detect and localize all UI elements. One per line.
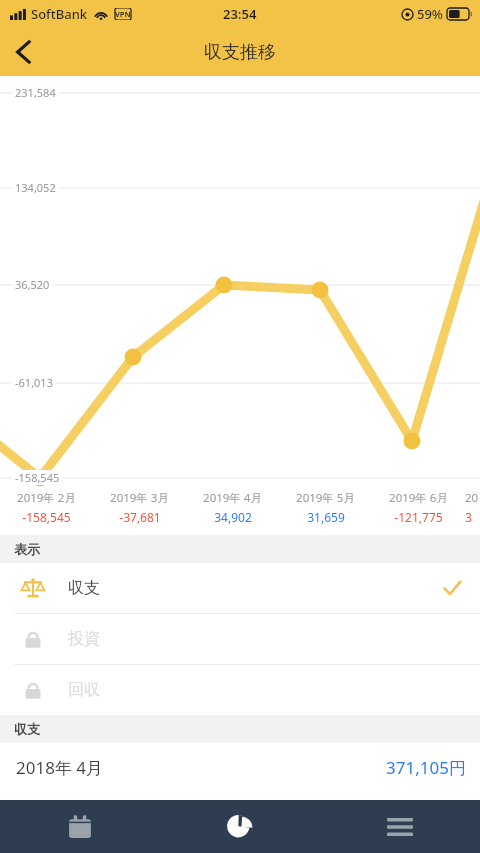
staticText: 134,052 xyxy=(15,180,56,195)
staticText: 371,105円 xyxy=(386,756,466,779)
button[interactable]: 投資 xyxy=(0,614,480,664)
staticText: 3 xyxy=(465,509,472,525)
button[interactable]: 回収 xyxy=(0,665,480,715)
button[interactable]: Charts xyxy=(160,800,320,853)
staticText: -158,545 xyxy=(15,470,60,485)
staticText: -121,775 xyxy=(394,509,443,525)
staticText: 2019年 6月 xyxy=(389,490,448,506)
staticText: -61,013 xyxy=(15,375,53,390)
staticText: 収支推移 xyxy=(204,41,276,64)
staticText: 2019年 4月 xyxy=(203,490,262,506)
staticText: SoftBank xyxy=(31,5,88,23)
staticText: 2019年 2月 xyxy=(17,490,76,506)
staticText: 34,902 xyxy=(214,509,252,525)
button[interactable]: Calendar xyxy=(0,800,160,853)
staticText: 36,520 xyxy=(15,277,50,292)
staticText: 2019年 5月 xyxy=(296,490,355,506)
button[interactable]: Menu xyxy=(320,800,480,853)
staticText: 2019年 3月 xyxy=(110,490,169,506)
staticText: -158,545 xyxy=(22,509,71,525)
staticText: 投資 xyxy=(68,629,100,649)
staticText: 59% xyxy=(417,5,443,23)
button[interactable]: Back xyxy=(0,28,48,76)
button[interactable]: 収支 xyxy=(0,563,480,613)
staticText: 収支 xyxy=(14,721,40,737)
staticText: 231,584 xyxy=(15,85,56,100)
staticText: VPN xyxy=(115,9,131,19)
staticText: 回収 xyxy=(68,680,100,700)
staticText: 23:54 xyxy=(223,5,257,23)
staticText: 収支 xyxy=(68,578,100,598)
staticText: 2018年 4月 xyxy=(16,756,104,779)
button[interactable]: 2018年 4月 xyxy=(0,743,480,791)
staticText: -37,681 xyxy=(119,509,161,525)
staticText: 31,659 xyxy=(307,509,345,525)
staticText: 20 xyxy=(465,490,479,506)
staticText: 表示 xyxy=(14,541,40,557)
